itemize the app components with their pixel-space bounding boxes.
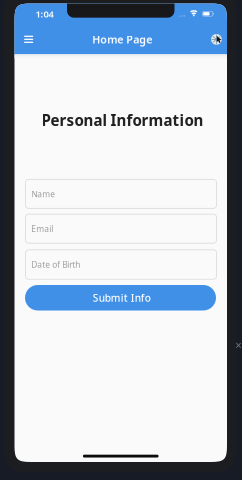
staticText: Home Page [92,32,152,47]
button[interactable]: Change language [205,28,227,50]
staticText: Name [31,188,55,200]
button[interactable]: Submit Info [25,285,216,310]
button[interactable]: Email [25,214,216,243]
staticText: Date of Birth [31,259,80,270]
button[interactable]: Date of Birth [25,250,216,279]
button[interactable]: Menu [17,27,41,51]
button[interactable]: Name [25,179,216,208]
staticText: Personal Information [41,110,203,130]
staticText: 1:04 [36,7,54,20]
staticText: Submit Info [93,291,151,305]
staticText: Email [31,223,53,234]
